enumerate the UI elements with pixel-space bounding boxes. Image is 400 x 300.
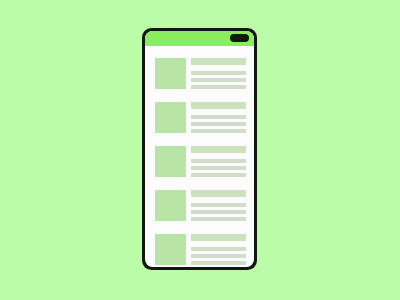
other: Front camera (230, 34, 249, 42)
button[interactable]: List item (155, 234, 246, 267)
button[interactable]: List item (155, 58, 246, 102)
button[interactable]: List item (155, 190, 246, 234)
button[interactable]: List item (155, 102, 246, 146)
button[interactable]: List item (155, 146, 246, 190)
button[interactable]: App bar (145, 31, 254, 46)
